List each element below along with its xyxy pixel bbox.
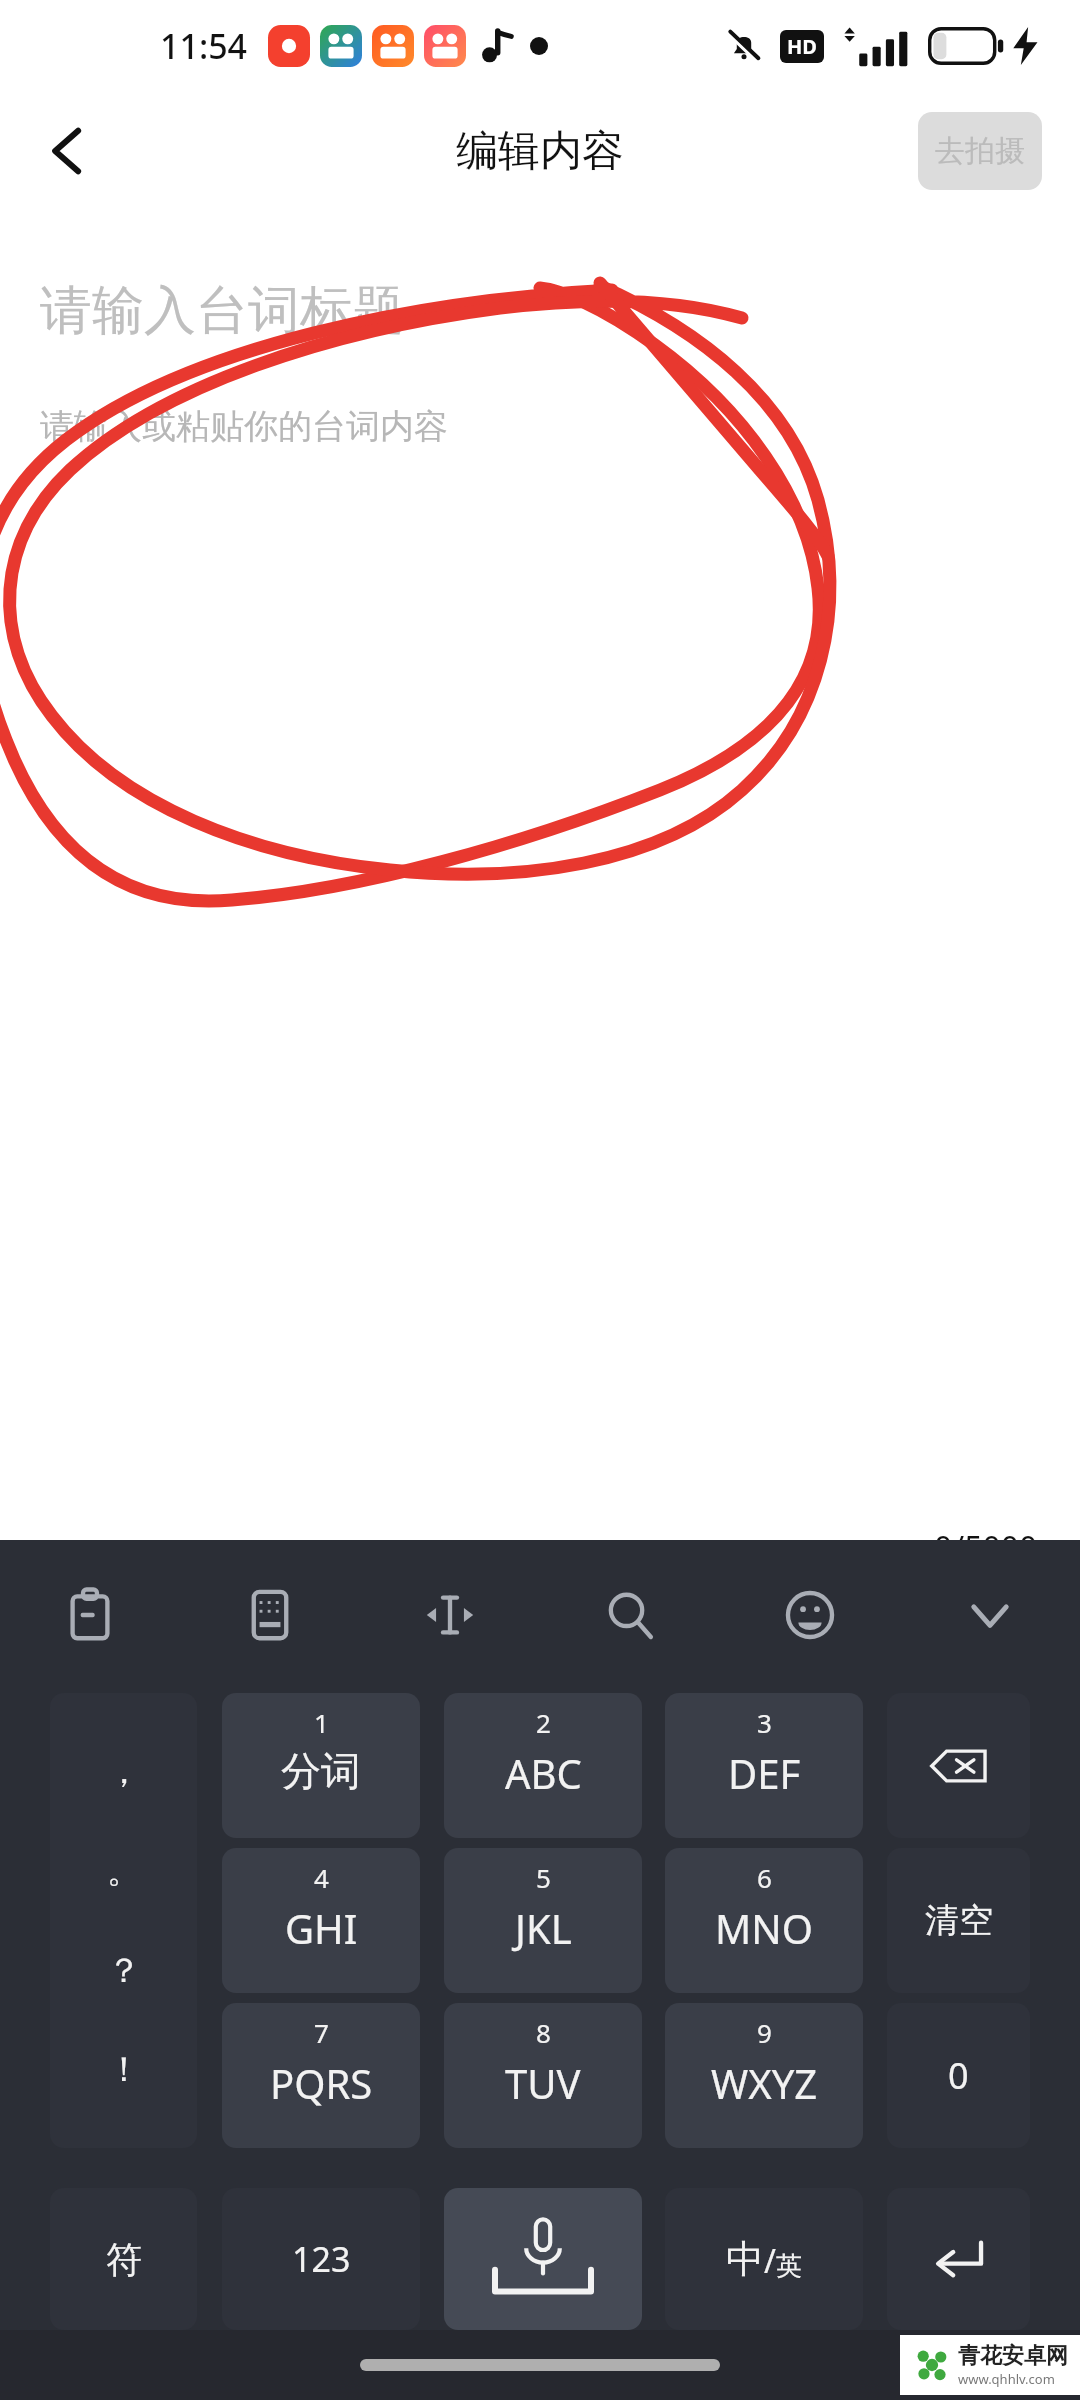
staticText: 。 (107, 1849, 141, 1892)
staticText: 7 (314, 2015, 329, 2050)
staticText: GHI (285, 1901, 358, 1955)
staticText: / (764, 2239, 776, 2283)
button[interactable]: Move cursor (360, 1540, 540, 1690)
staticText: 请输入或粘贴你的台词内容 (40, 405, 448, 448)
button[interactable]: Emoji (720, 1540, 900, 1690)
button[interactable]: 符 (50, 2188, 197, 2330)
button[interactable]: 中 (665, 2188, 863, 2330)
button[interactable]: Keyboard settings (180, 1540, 360, 1690)
staticText: 清空 (925, 1899, 993, 1942)
button[interactable]: 请输入台词标题 (0, 256, 1080, 366)
staticText: 9 (757, 2015, 772, 2050)
button[interactable]: 0 (887, 2003, 1030, 2148)
staticText: 3 (757, 1705, 772, 1740)
button[interactable]: 2 (444, 1693, 642, 1838)
button[interactable]: Space / Voice input (444, 2188, 642, 2330)
button[interactable]: 1 (222, 1693, 420, 1838)
staticText: 8 (536, 2015, 551, 2050)
button[interactable]: Enter (887, 2188, 1030, 2330)
staticText: 分词 (281, 1746, 361, 1796)
button[interactable]: 8 (444, 2003, 642, 2148)
staticText: 去拍摄 (935, 132, 1025, 170)
staticText: 0 (948, 2051, 969, 2100)
staticText: 123 (292, 2236, 351, 2282)
staticText: DEF (728, 1746, 801, 1800)
button[interactable]: 清空 (887, 1848, 1030, 1993)
staticText: ！ (107, 2048, 141, 2091)
staticText: MNO (715, 1901, 813, 1955)
staticText: 2 (536, 1705, 551, 1740)
staticText: ？ (107, 1949, 141, 1992)
button[interactable]: ， (50, 1693, 197, 2148)
staticText: ABC (505, 1746, 582, 1800)
staticText: 6 (757, 1860, 772, 1895)
staticText: 4 (314, 1860, 329, 1895)
button[interactable]: Clipboard (0, 1540, 180, 1690)
button[interactable]: Hide keyboard (900, 1540, 1080, 1690)
staticText: 5 (536, 1860, 551, 1895)
staticText: 0/5000 (934, 1526, 1038, 1570)
staticText: HD (787, 33, 817, 60)
button[interactable]: Backspace (887, 1693, 1030, 1838)
staticText: 符 (106, 2237, 142, 2282)
staticText: 请输入台词标题 (40, 278, 404, 344)
staticText: 英 (776, 2250, 802, 2283)
button[interactable]: 7 (222, 2003, 420, 2148)
staticText: 11:54 (160, 23, 248, 69)
button[interactable]: 3 (665, 1693, 863, 1838)
staticText: 编辑内容 (456, 125, 624, 178)
button[interactable]: 5 (444, 1848, 642, 1993)
staticText: JKL (515, 1901, 572, 1955)
staticText: WXYZ (711, 2056, 818, 2110)
button[interactable]: 123 (222, 2188, 420, 2330)
staticText: 中 (726, 2235, 764, 2283)
button[interactable]: 4 (222, 1848, 420, 1993)
staticText: 1 (314, 1705, 329, 1740)
staticText: TUV (505, 2056, 581, 2110)
button[interactable]: Back (20, 103, 116, 199)
button[interactable]: Search (540, 1540, 720, 1690)
staticText: www.qhhlv.com (958, 2370, 1055, 2388)
staticText: 青花安卓网 (958, 2342, 1068, 2370)
button[interactable]: 去拍摄 (918, 112, 1042, 190)
button[interactable]: 9 (665, 2003, 863, 2148)
staticText: PQRS (270, 2056, 373, 2110)
staticText: ， (107, 1750, 141, 1793)
button[interactable]: 6 (665, 1848, 863, 1993)
button[interactable]: 请输入或粘贴你的台词内容 (0, 366, 1080, 486)
